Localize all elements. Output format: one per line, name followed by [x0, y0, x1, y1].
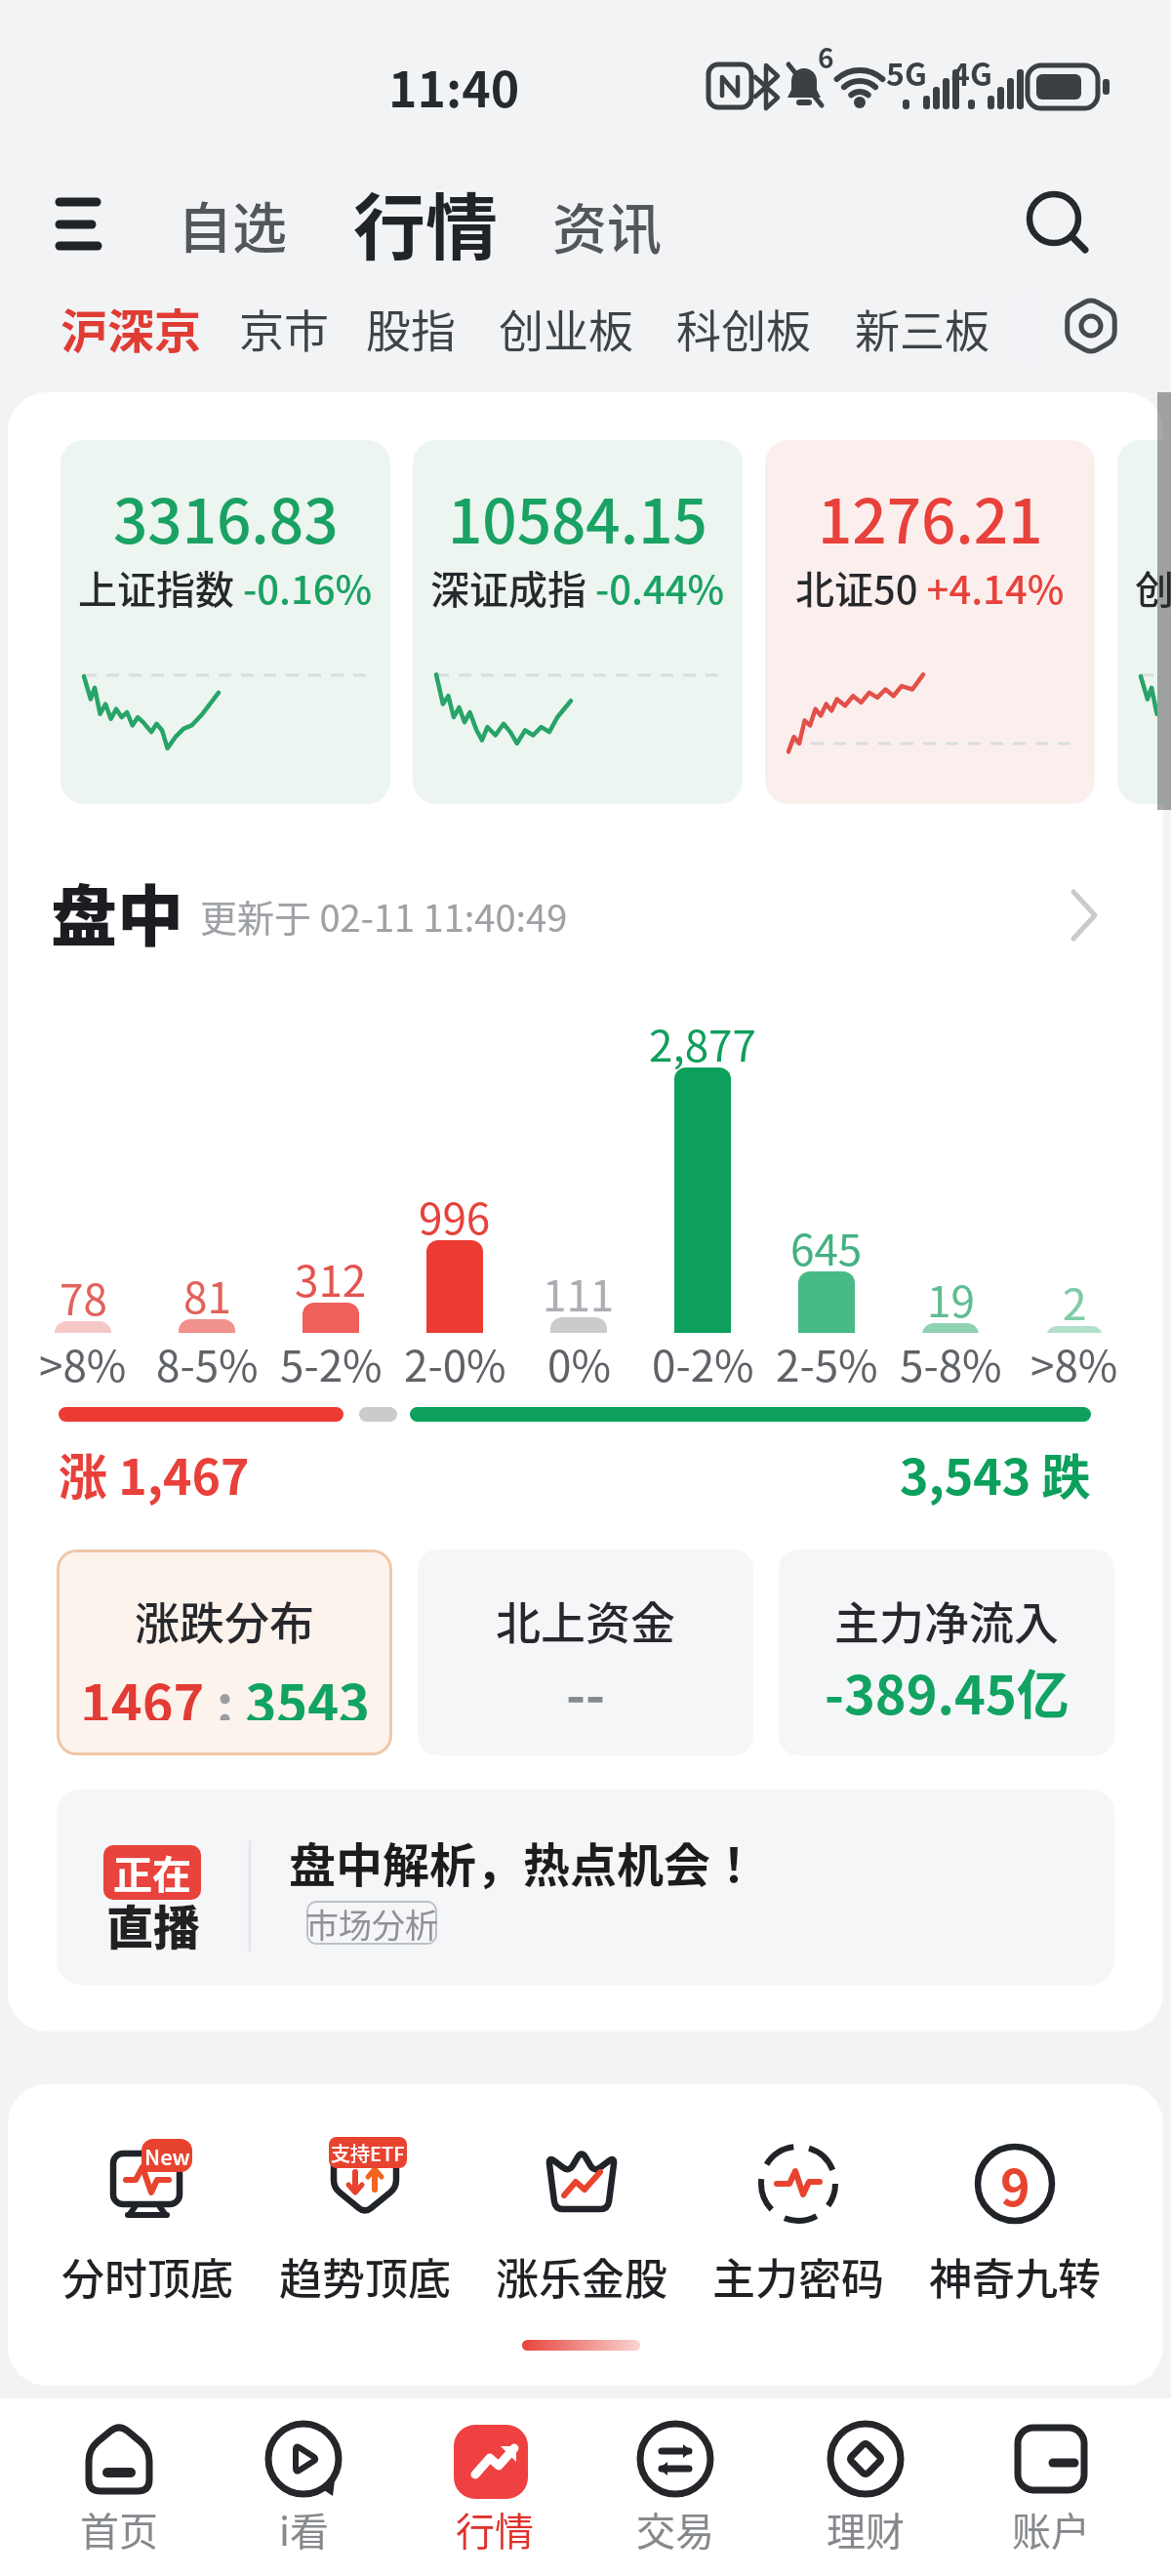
staticText: 市场分析	[305, 1900, 438, 1948]
staticText: >8%	[1030, 1332, 1118, 1394]
staticText: 支持ETF	[331, 2139, 405, 2167]
button[interactable]	[693, 2108, 904, 2322]
button[interactable]	[909, 2108, 1120, 2322]
staticText: 京市	[239, 296, 329, 361]
staticText: 5G	[886, 50, 927, 95]
button[interactable]	[585, 2402, 766, 2573]
staticText: 4G	[951, 50, 992, 95]
button[interactable]: 科创板	[661, 274, 827, 382]
staticText: 深证成指 -0.44%	[430, 559, 725, 616]
staticText: 涨乐金股	[496, 2245, 667, 2308]
button[interactable]: 京市	[216, 274, 352, 382]
staticText: 首页	[80, 2501, 158, 2557]
button[interactable]	[61, 440, 390, 804]
staticText: 上证指数 -0.16%	[78, 559, 373, 616]
button[interactable]: 新三板	[839, 274, 1005, 382]
staticText: 沪深京	[61, 294, 202, 362]
staticText: 盘中	[51, 864, 184, 959]
staticText: 10584.15	[448, 473, 707, 561]
button[interactable]	[39, 859, 1132, 966]
button[interactable]	[413, 440, 743, 804]
staticText: 科创板	[676, 296, 811, 361]
button[interactable]	[28, 2402, 210, 2573]
staticText: 理财	[827, 2501, 905, 2557]
staticText: 2	[1063, 1270, 1087, 1333]
staticText: 0-2%	[652, 1332, 754, 1394]
staticText: New	[144, 2140, 190, 2171]
staticText: 更新于 02-11 11:40:49	[200, 889, 568, 943]
staticText: 正在	[113, 1844, 191, 1901]
staticText: 78	[60, 1266, 107, 1328]
button[interactable]	[57, 1790, 1114, 1985]
staticText: 北上资金	[496, 1588, 675, 1653]
staticText: 1276.21	[818, 473, 1043, 561]
staticText: 2-0%	[404, 1332, 506, 1394]
staticText: 6	[818, 37, 834, 77]
button[interactable]: 股指	[343, 274, 479, 382]
staticText: 自选	[178, 184, 287, 263]
staticText: 直播	[106, 1890, 201, 1958]
staticText: 3316.83	[113, 473, 339, 561]
staticText: -389.45亿	[825, 1653, 1070, 1729]
staticText: 涨 1,467	[59, 1438, 250, 1509]
button[interactable]	[404, 2402, 585, 2573]
staticText: --	[566, 1653, 605, 1729]
staticText: 北证50 +4.14%	[795, 559, 1065, 616]
button[interactable]	[960, 2402, 1142, 2573]
staticText: 645	[790, 1216, 863, 1278]
button[interactable]	[775, 2402, 956, 2573]
staticText: 涨跌分布	[135, 1588, 314, 1653]
staticText: 5-2%	[280, 1332, 383, 1394]
staticText: 创业板	[499, 296, 633, 361]
staticText: 主力密码	[712, 2245, 884, 2308]
button[interactable]: 创业板	[483, 274, 649, 382]
staticText: i看	[279, 2501, 329, 2557]
staticText: 行情	[353, 170, 498, 274]
staticText: 资讯	[552, 185, 662, 264]
button[interactable]	[260, 2108, 470, 2322]
staticText: 神奇九转	[929, 2245, 1101, 2308]
staticText: 盘中解析，热点机会！	[289, 1828, 758, 1896]
button[interactable]	[765, 440, 1095, 804]
button[interactable]: 沪深京	[48, 274, 214, 382]
staticText: 趋势顶底	[279, 2245, 451, 2308]
button[interactable]	[57, 1550, 392, 1755]
staticText: 行情	[456, 2501, 534, 2557]
button[interactable]: 行情	[328, 168, 523, 275]
staticText: >8%	[39, 1332, 127, 1394]
button[interactable]	[476, 2108, 687, 2322]
staticText: 2,877	[649, 1012, 756, 1074]
button[interactable]	[1117, 440, 1163, 804]
staticText: 312	[295, 1247, 367, 1309]
button[interactable]	[779, 1550, 1114, 1755]
staticText: 9	[1000, 2148, 1030, 2221]
staticText: 11:40	[388, 51, 520, 121]
staticText: 19	[927, 1268, 975, 1330]
staticText: 账户	[1012, 2501, 1090, 2557]
button[interactable]: 自选	[144, 170, 320, 277]
staticText: 创业板指 -0.77%	[1135, 559, 1171, 616]
staticText: 2-5%	[776, 1332, 878, 1394]
staticText: 主力净流入	[834, 1588, 1059, 1653]
staticText: 5-8%	[900, 1332, 1002, 1394]
staticText: 111	[543, 1262, 615, 1324]
button[interactable]	[42, 2108, 253, 2322]
button[interactable]	[418, 1550, 753, 1755]
staticText: 1467 : 3543	[80, 1662, 370, 1720]
button[interactable]: 资讯	[519, 171, 695, 278]
button[interactable]	[1015, 181, 1103, 264]
staticText: 新三板	[855, 296, 989, 361]
staticText: 8-5%	[156, 1332, 259, 1394]
staticText: 81	[183, 1264, 231, 1326]
staticText: 分时顶底	[61, 2245, 233, 2308]
button[interactable]	[44, 181, 112, 264]
staticText: 996	[419, 1185, 491, 1247]
staticText: 3,543 跌	[900, 1438, 1091, 1509]
button[interactable]	[213, 2402, 394, 2573]
staticText: 0%	[547, 1332, 611, 1394]
staticText: 交易	[636, 2501, 714, 2557]
staticText: 股指	[366, 296, 456, 361]
